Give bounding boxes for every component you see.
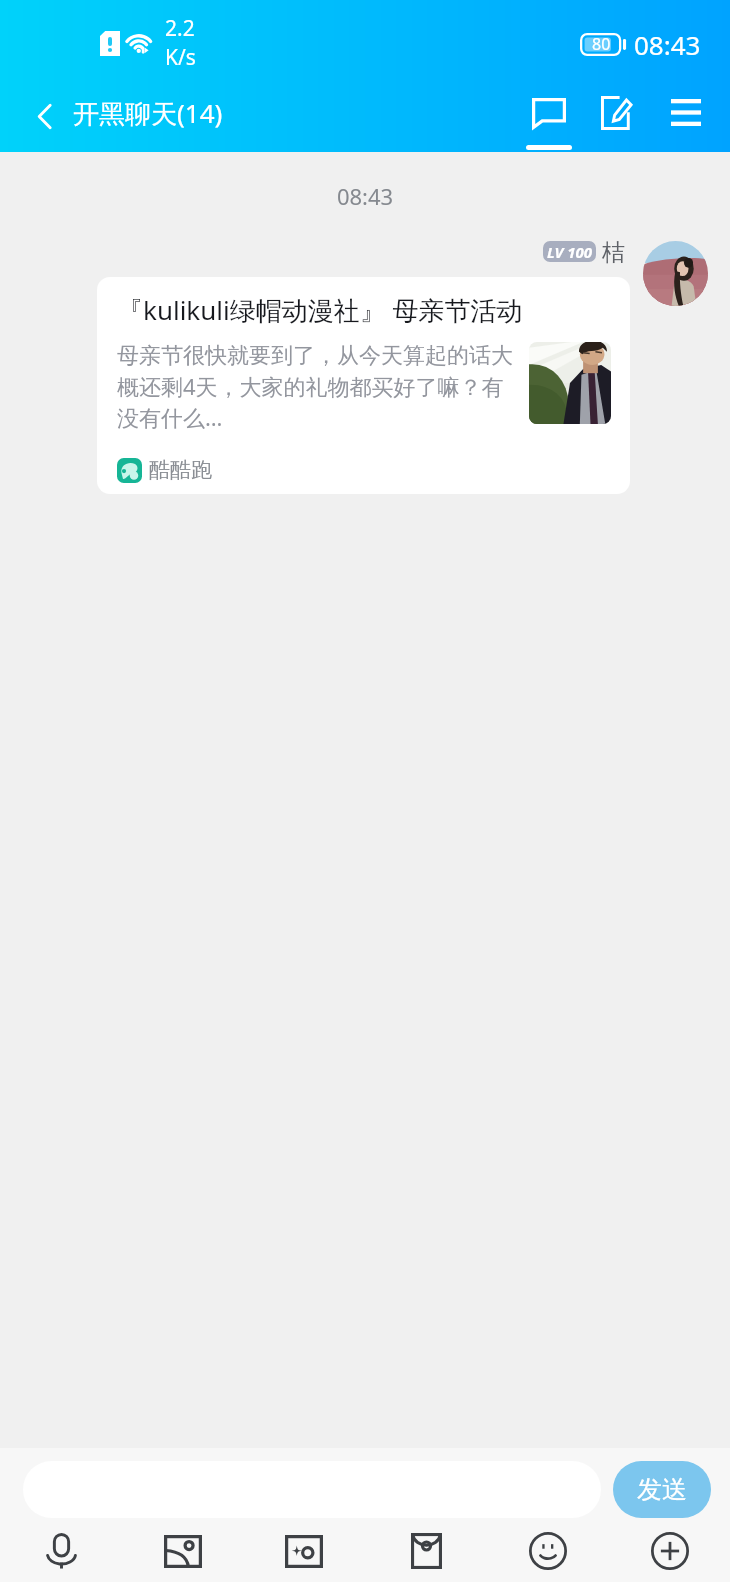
button[interactable]: More	[608, 1518, 730, 1582]
button[interactable]: Red packet	[364, 1518, 486, 1582]
staticText: 酷酷跑	[149, 457, 212, 483]
staticText: 开黑聊天(14)	[73, 95, 223, 131]
button[interactable]: Image	[121, 1518, 242, 1582]
staticText: 2.2	[165, 14, 195, 43]
button[interactable]: Compose	[585, 84, 657, 149]
button[interactable]: 『kulikuli绿帽动漫社』 母亲节活动	[97, 277, 630, 494]
button[interactable]: Menu	[657, 84, 729, 149]
staticText: 『kulikuli绿帽动漫社』 母亲节活动	[117, 292, 523, 328]
button[interactable]: Back	[12, 84, 76, 149]
staticText: 桔	[602, 238, 625, 267]
staticText: 发送	[637, 1474, 687, 1505]
staticText: LV 100	[547, 242, 593, 262]
button[interactable]: Messages	[513, 84, 585, 149]
staticText: 08:43	[0, 181, 730, 211]
button[interactable]: Voice	[0, 1518, 121, 1582]
staticText: K/s	[165, 43, 196, 72]
button[interactable]: Avatar	[643, 241, 708, 306]
button[interactable]: 发送	[613, 1461, 711, 1518]
button[interactable]: Sticker	[242, 1518, 364, 1582]
staticText: 母亲节很快就要到了，从今天算起的话大概还剩4天，大家的礼物都买好了嘛？有没有什么…	[117, 342, 515, 432]
staticText: 08:43	[634, 27, 701, 62]
staticText: 80	[592, 33, 611, 55]
button[interactable]: Emoji	[486, 1518, 608, 1582]
